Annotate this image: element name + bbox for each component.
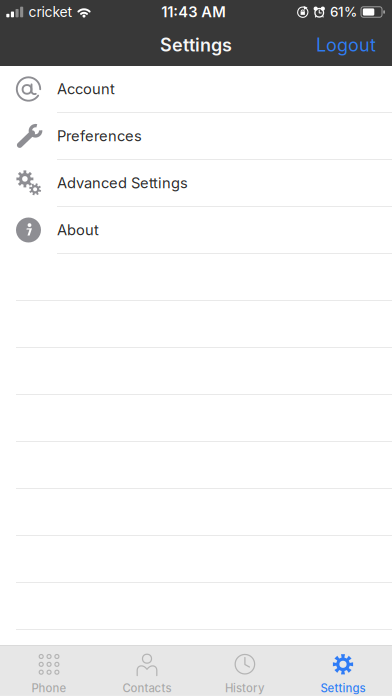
staticText: History (225, 681, 265, 695)
staticText: cricket (28, 3, 72, 20)
button[interactable]: Preferences (0, 113, 392, 159)
staticText: Logout (316, 34, 376, 56)
staticText: Phone (31, 681, 66, 695)
button[interactable]: History (196, 646, 294, 696)
staticText: Settings (160, 34, 232, 56)
staticText: Advanced Settings (57, 174, 188, 192)
staticText: 11:43 AM (161, 3, 226, 21)
button[interactable]: Advanced Settings (0, 160, 392, 206)
button[interactable]: Account (0, 66, 392, 112)
staticText: Account (57, 80, 115, 98)
button[interactable]: Logout (316, 25, 392, 65)
staticText: Preferences (57, 127, 142, 145)
staticText: Settings (320, 681, 365, 695)
button[interactable]: About (0, 207, 392, 253)
button[interactable]: Phone (0, 646, 98, 696)
staticText: Contacts (122, 681, 171, 695)
staticText: 61% (330, 4, 357, 20)
button[interactable]: Contacts (98, 646, 196, 696)
button[interactable]: Settings (294, 646, 392, 696)
staticText: About (57, 221, 99, 239)
